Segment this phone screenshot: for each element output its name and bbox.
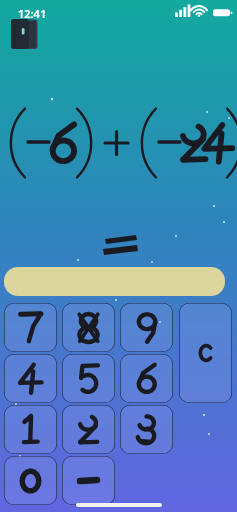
button[interactable]: 8 — [62, 303, 115, 352]
button[interactable]: 6 — [120, 354, 173, 403]
button[interactable]: 7 — [4, 303, 57, 352]
button[interactable]: 5 — [62, 354, 115, 403]
button[interactable]: 3 — [120, 405, 173, 454]
button[interactable]: Clear — [179, 303, 232, 403]
button[interactable]: 0 — [4, 456, 57, 505]
button[interactable]: 1 — [4, 405, 57, 454]
button[interactable]: Notebook — [11, 19, 38, 49]
button[interactable]: 4 — [4, 354, 57, 403]
button[interactable]: Answer input — [4, 267, 225, 296]
button[interactable]: - — [62, 456, 115, 505]
staticText: 12:41 — [18, 6, 47, 21]
button[interactable]: 2 — [62, 405, 115, 454]
button[interactable]: 9 — [120, 303, 173, 352]
